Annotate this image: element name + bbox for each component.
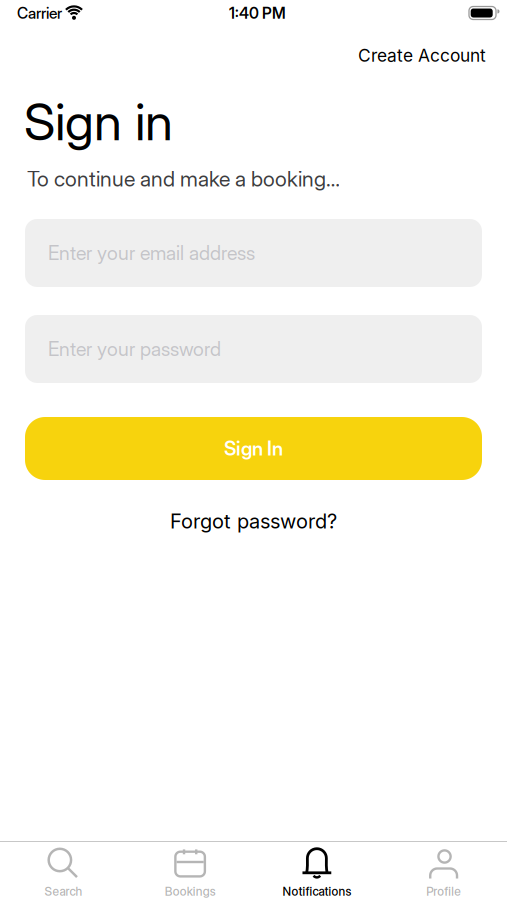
staticText: Search bbox=[44, 884, 82, 898]
staticText: Profile bbox=[426, 884, 461, 898]
button[interactable]: Profile bbox=[380, 846, 507, 898]
button[interactable]: Enter your email address bbox=[25, 219, 482, 287]
button[interactable]: Notifications bbox=[253, 846, 380, 898]
staticText: Enter your email address bbox=[48, 241, 255, 265]
staticText: Sign In bbox=[224, 437, 283, 460]
staticText: Carrier bbox=[17, 4, 62, 22]
button[interactable]: Create Account bbox=[358, 45, 486, 66]
button[interactable]: Search bbox=[0, 846, 127, 898]
staticText: Enter your password bbox=[48, 337, 221, 361]
button[interactable]: Bookings bbox=[127, 846, 254, 898]
staticText: To continue and make a booking… bbox=[27, 166, 340, 192]
button[interactable]: Forgot password? bbox=[170, 509, 337, 533]
button[interactable]: Enter your password bbox=[25, 315, 482, 383]
staticText: Forgot password? bbox=[170, 509, 337, 533]
staticText: Create Account bbox=[358, 45, 486, 66]
staticText: 1:40 PM bbox=[229, 4, 286, 22]
button[interactable]: Sign In bbox=[25, 417, 482, 480]
staticText: Notifications bbox=[282, 884, 351, 898]
staticText: Bookings bbox=[165, 884, 216, 898]
staticText: Sign in bbox=[24, 91, 173, 153]
